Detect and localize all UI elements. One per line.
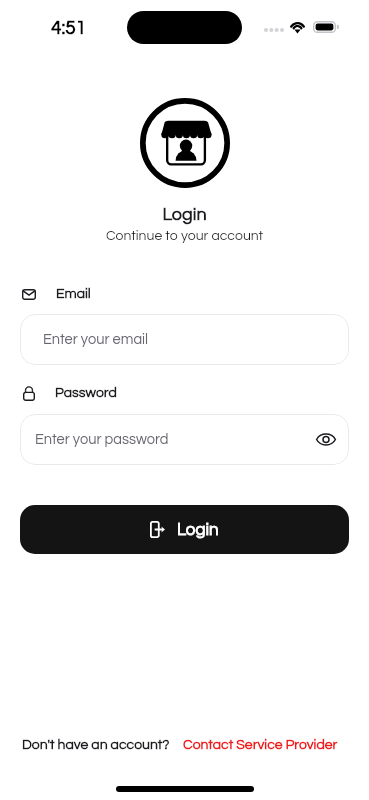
- button[interactable]: Enter your email: [20, 314, 349, 365]
- other: Login: [150, 521, 165, 538]
- staticText: Email: [56, 287, 91, 301]
- staticText: Login: [177, 521, 219, 539]
- staticText: Password: [55, 386, 117, 400]
- button[interactable]: Enter your password: [20, 414, 349, 465]
- other: Email: [22, 289, 36, 300]
- staticText: Login: [0, 205, 369, 224]
- staticText: Contact Service Provider: [183, 738, 338, 752]
- button[interactable]: Login: [20, 505, 349, 554]
- staticText: Enter your password: [35, 432, 169, 447]
- staticText: Continue to your account: [0, 229, 369, 243]
- staticText: Don't have an account?: [22, 738, 170, 752]
- staticText: Enter your email: [43, 332, 149, 347]
- other: Password: [23, 385, 35, 401]
- other: Show password: [316, 432, 336, 447]
- staticText: 4:51: [51, 18, 87, 38]
- button[interactable]: Contact Service Provider: [183, 738, 338, 752]
